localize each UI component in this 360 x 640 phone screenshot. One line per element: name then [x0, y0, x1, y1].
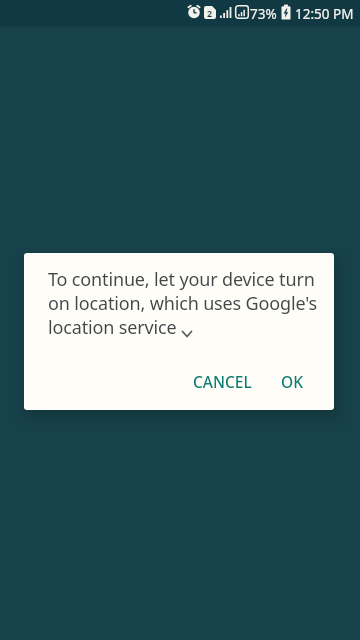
- button[interactable]: OK: [263, 359, 321, 403]
- staticText: To continue, let your device turn on loc…: [48, 267, 318, 339]
- staticText: CANCEL: [193, 371, 252, 392]
- staticText: OK: [281, 371, 303, 392]
- staticText: 73%: [250, 5, 277, 23]
- button[interactable]: CANCEL: [182, 359, 262, 403]
- staticText: 2: [207, 7, 213, 19]
- staticText: 12:50 PM: [295, 5, 354, 23]
